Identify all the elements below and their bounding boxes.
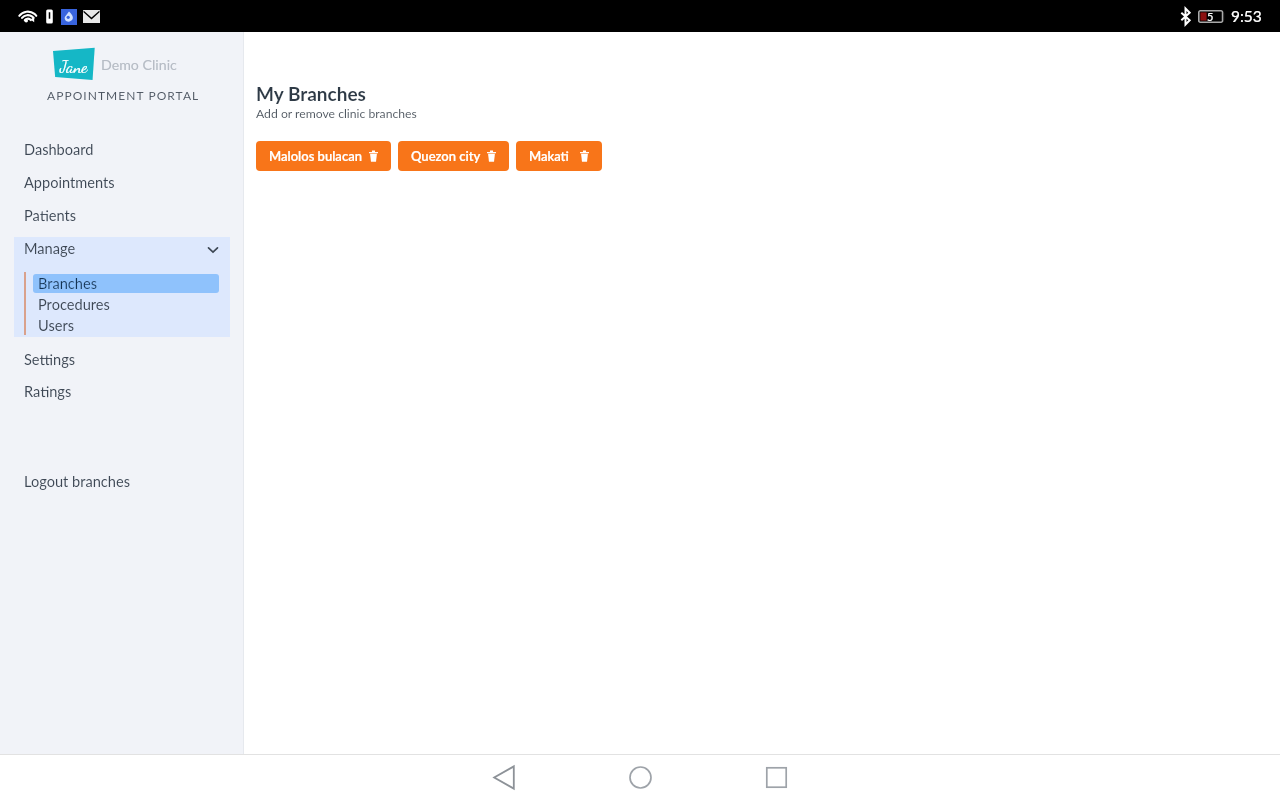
- staticText: Users: [38, 317, 74, 335]
- button[interactable]: Patients: [0, 199, 243, 232]
- staticText: Demo Clinic: [101, 56, 177, 73]
- other: Delete Makati: [580, 150, 589, 162]
- button[interactable]: Appointments: [0, 166, 243, 199]
- staticText: Quezon city: [411, 148, 481, 164]
- other: Delete Quezon city: [487, 150, 496, 162]
- button[interactable]: Back: [464, 755, 544, 800]
- staticText: Appointments: [24, 174, 115, 192]
- button[interactable]: Logout branches: [0, 465, 243, 498]
- staticText: Jane: [60, 56, 88, 76]
- button[interactable]: Settings: [0, 343, 243, 376]
- button[interactable]: Quezon city: [398, 141, 509, 171]
- staticText: Add or remove clinic branches: [256, 106, 417, 121]
- staticText: Ratings: [24, 383, 72, 401]
- button[interactable]: Collapse Manage: [203, 240, 223, 260]
- staticText: My Branches: [256, 82, 366, 105]
- button[interactable]: Procedures: [0, 295, 243, 315]
- button[interactable]: Manage: [0, 232, 243, 266]
- button[interactable]: Ratings: [0, 375, 243, 408]
- staticText: 5: [1207, 10, 1214, 23]
- button[interactable]: Home: [600, 755, 680, 800]
- staticText: Settings: [24, 351, 76, 369]
- button[interactable]: Users: [0, 316, 243, 336]
- staticText: APPOINTMENT PORTAL: [47, 88, 200, 102]
- staticText: Manage: [24, 240, 76, 258]
- staticText: Dashboard: [24, 141, 94, 159]
- button[interactable]: Malolos bulacan: [256, 141, 391, 171]
- staticText: Makati: [529, 148, 569, 164]
- staticText: Malolos bulacan: [269, 148, 362, 164]
- button[interactable]: Dashboard: [0, 133, 243, 166]
- staticText: Logout branches: [24, 473, 130, 491]
- staticText: Procedures: [38, 296, 110, 314]
- button[interactable]: Recent apps: [736, 755, 816, 800]
- button[interactable]: Branches: [0, 274, 243, 293]
- staticText: Patients: [24, 207, 76, 225]
- staticText: Branches: [38, 275, 98, 293]
- staticText: 9:53: [1231, 7, 1262, 26]
- other: Delete Malolos bulacan: [369, 150, 378, 162]
- button[interactable]: Makati: [516, 141, 602, 171]
